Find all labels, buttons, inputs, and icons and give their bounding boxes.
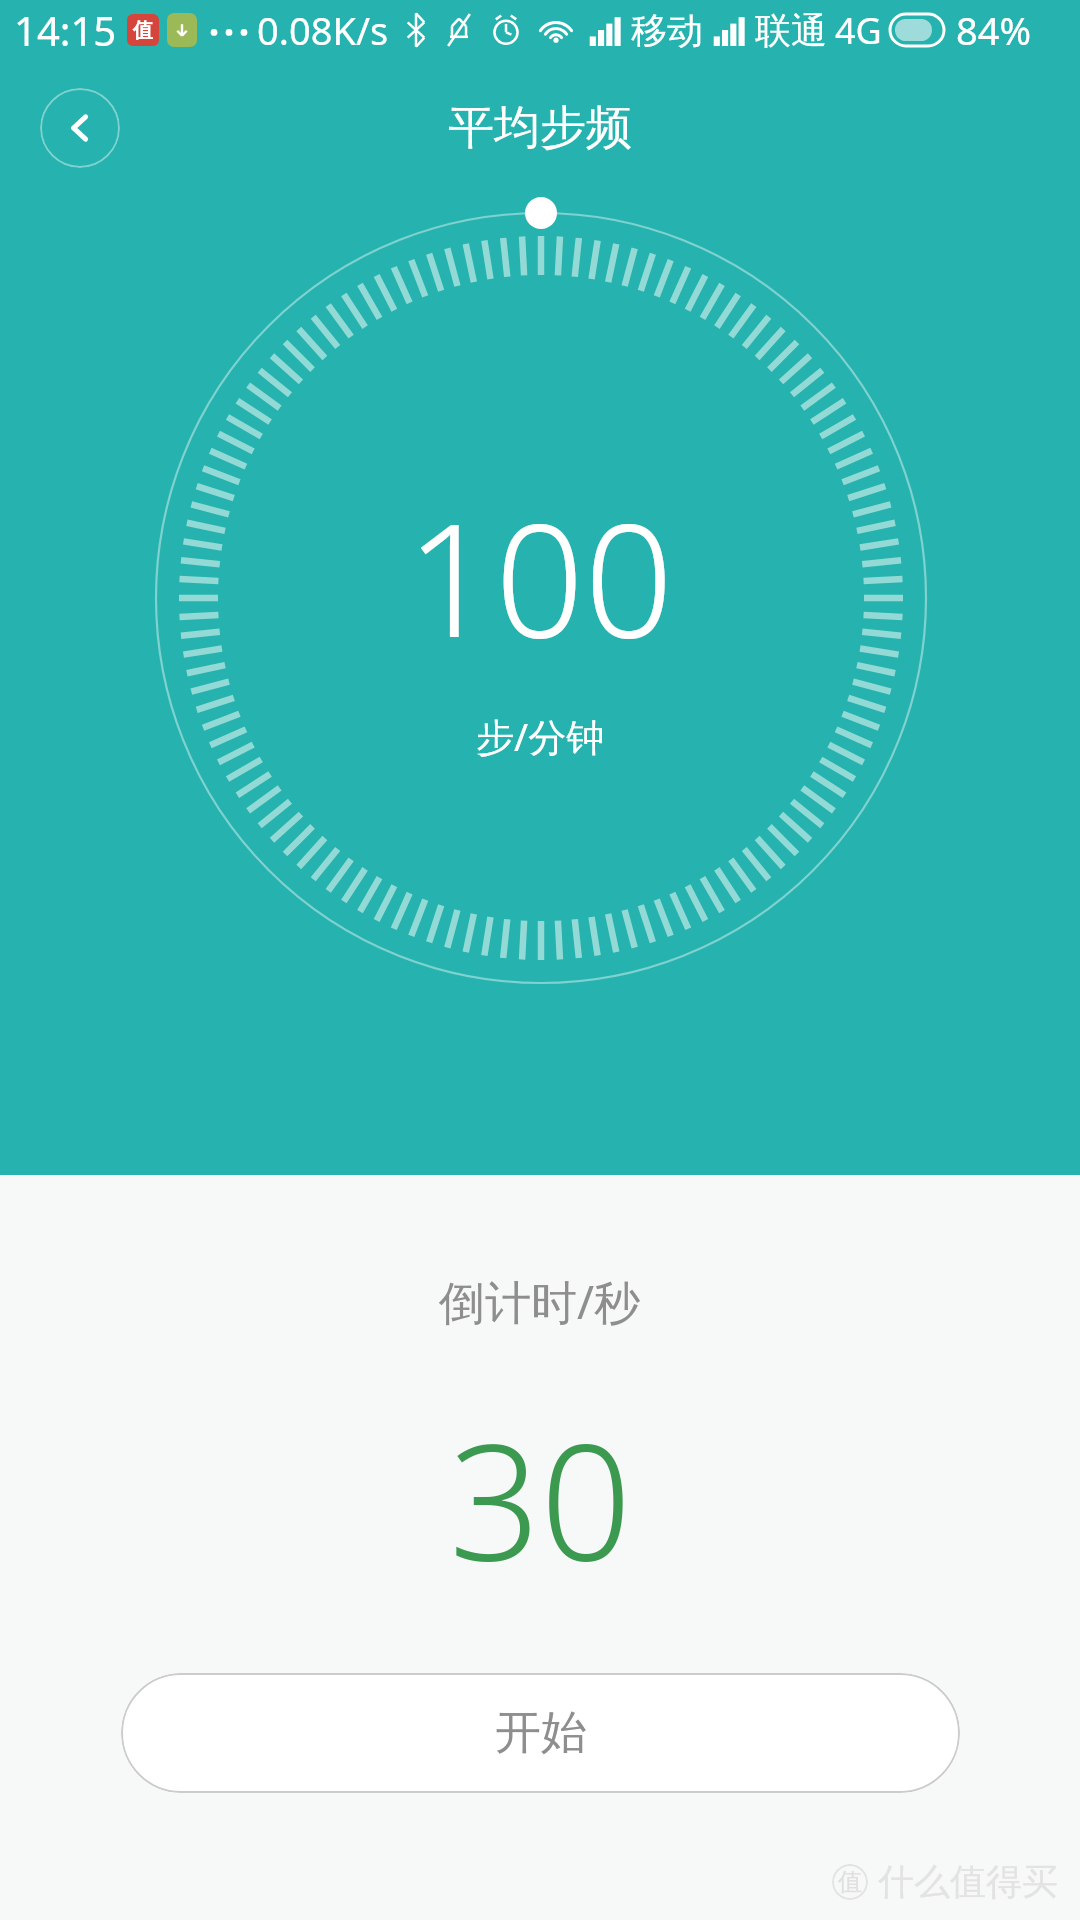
staticText: 值 (133, 18, 153, 43)
staticText: 倒计时/秒 (439, 1270, 641, 1333)
staticText: 步/分钟 (476, 710, 605, 762)
staticText: 30 (449, 1389, 632, 1607)
staticText: 值 (838, 1867, 862, 1897)
staticText: 联通 (755, 8, 827, 53)
staticText: 什么值得买 (878, 1859, 1058, 1904)
staticText: 移动 (631, 8, 703, 53)
staticText: 平均步频 (448, 99, 632, 157)
button[interactable]: Back (40, 88, 120, 168)
staticText: 4G (835, 6, 882, 55)
staticText: 0.08K/s (257, 4, 389, 56)
button[interactable]: 开始 (121, 1673, 960, 1793)
staticText: 100 (406, 470, 674, 682)
staticText: 开始 (495, 1704, 587, 1762)
staticText: 84% (956, 4, 1032, 56)
staticText: 14:15 (14, 3, 117, 57)
